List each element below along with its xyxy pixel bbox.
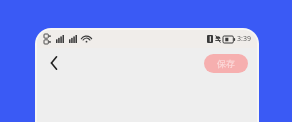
- staticText: 3:39: [237, 34, 251, 44]
- staticText: 保存: [217, 58, 235, 69]
- button[interactable]: 保存: [204, 54, 248, 73]
- button[interactable]: Back: [43, 52, 65, 74]
